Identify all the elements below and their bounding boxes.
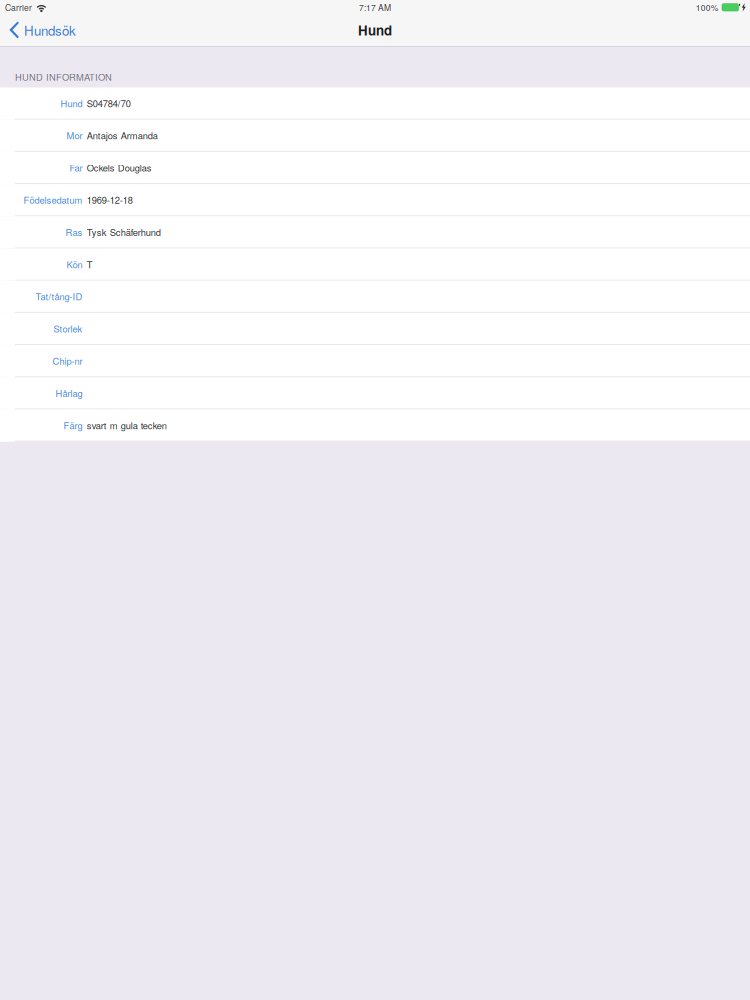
staticText: 100% (696, 1, 719, 13)
button[interactable]: Hundsök (0, 17, 86, 43)
staticText: Carrier (5, 1, 32, 13)
button[interactable]: Färg (0, 409, 750, 442)
button[interactable]: Far (0, 152, 750, 184)
staticText: HUND INFORMATION (15, 70, 112, 83)
button[interactable]: Chip-nr (0, 345, 750, 377)
staticText: Hund (358, 20, 392, 40)
staticText: Färg (63, 418, 82, 432)
staticText: Kön (66, 257, 82, 271)
staticText: svart m gula tecken (87, 418, 167, 432)
button[interactable]: Tat/tång-ID (0, 281, 750, 313)
staticText: Ockels Douglas (87, 161, 152, 174)
button[interactable]: Mor (0, 120, 750, 152)
staticText: Hårlag (55, 386, 82, 400)
staticText: 7:17 AM (359, 1, 391, 13)
button[interactable]: Hund (0, 87, 750, 120)
button[interactable]: Storlek (0, 313, 750, 345)
staticText: Antajos Armanda (87, 129, 158, 142)
staticText: Chip-nr (52, 354, 82, 367)
button[interactable]: Födelsedatum (0, 184, 750, 216)
staticText: Födelsedatum (23, 193, 82, 206)
staticText: Far (69, 161, 82, 174)
staticText: 1969-12-18 (87, 193, 133, 206)
staticText: Tysk Schäferhund (87, 225, 161, 239)
staticText: S04784/70 (87, 96, 131, 110)
button[interactable]: Hårlag (0, 377, 750, 409)
staticText: Tat/tång-ID (35, 290, 82, 303)
staticText: T (87, 257, 93, 271)
staticText: Mor (66, 129, 82, 142)
staticText: Hund (60, 96, 82, 110)
staticText: Ras (65, 225, 82, 239)
button[interactable]: Kön (0, 248, 750, 281)
button[interactable]: Ras (0, 216, 750, 248)
staticText: Storlek (53, 322, 82, 335)
staticText: Hundsök (24, 20, 76, 40)
